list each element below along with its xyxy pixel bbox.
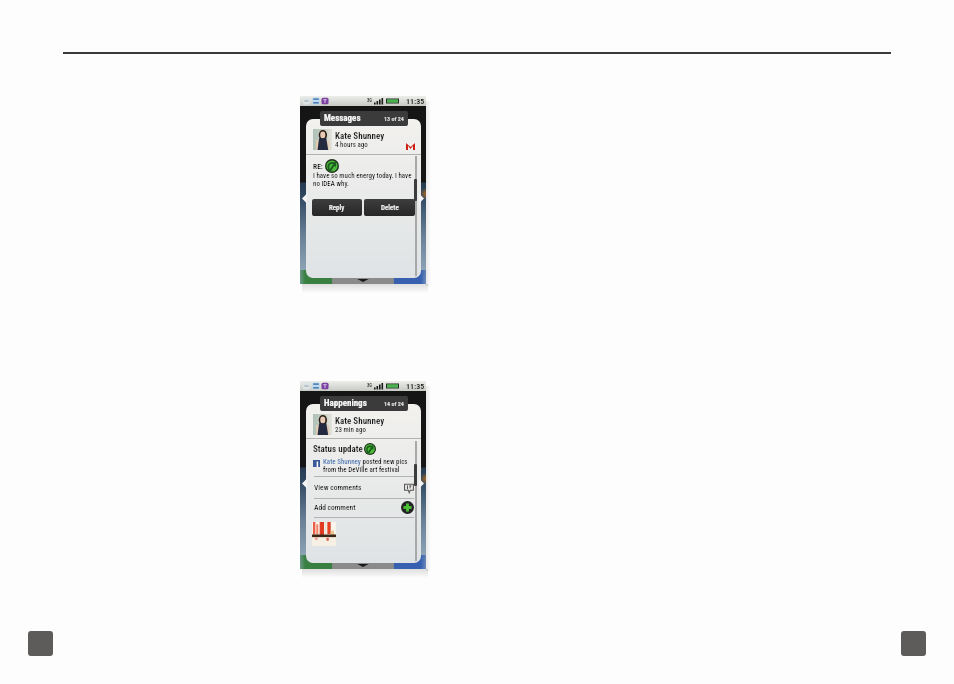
- button[interactable]: Delete: [364, 199, 415, 216]
- button[interactable]: View comments: [306, 479, 421, 496]
- staticText: 14 of 24: [384, 400, 404, 407]
- staticText: Messages: [324, 113, 361, 124]
- staticText: 23 min ago: [335, 426, 366, 434]
- staticText: 11:35: [406, 97, 425, 106]
- staticText: 3G: [367, 98, 372, 103]
- staticText: 13 of 24: [384, 115, 404, 122]
- button[interactable]: Happenings: [320, 396, 408, 411]
- other: Reply: [325, 159, 339, 173]
- button[interactable]: Messages: [320, 111, 408, 126]
- staticText: Status update: [313, 444, 363, 455]
- staticText: 4 hours ago: [335, 141, 368, 149]
- other: View comments: [404, 483, 414, 493]
- staticText: Reply: [329, 204, 345, 212]
- staticText: View comments: [314, 483, 362, 492]
- button[interactable]: Kate Shunney: [306, 404, 421, 439]
- staticText: Delete: [381, 204, 399, 212]
- staticText: 11:35: [406, 382, 425, 391]
- button[interactable]: Add comment: [306, 499, 421, 516]
- staticText: Kate Shunney: [335, 131, 385, 142]
- staticText: I have so much energy today. I have no I…: [313, 172, 419, 188]
- staticText: Kate Shunney posted new pics from the De…: [323, 458, 417, 474]
- button[interactable]: Reply: [312, 199, 362, 216]
- other: Reply: [364, 443, 376, 455]
- staticText: Kate Shunney: [335, 416, 385, 427]
- button[interactable]: Photo: [312, 522, 336, 546]
- staticText: Happenings: [324, 398, 367, 409]
- other: Add comment: [401, 501, 414, 514]
- button[interactable]: Kate Shunney: [306, 119, 421, 154]
- staticText: 3G: [367, 383, 372, 388]
- staticText: Add comment: [314, 503, 356, 512]
- staticText: RE:: [313, 162, 323, 171]
